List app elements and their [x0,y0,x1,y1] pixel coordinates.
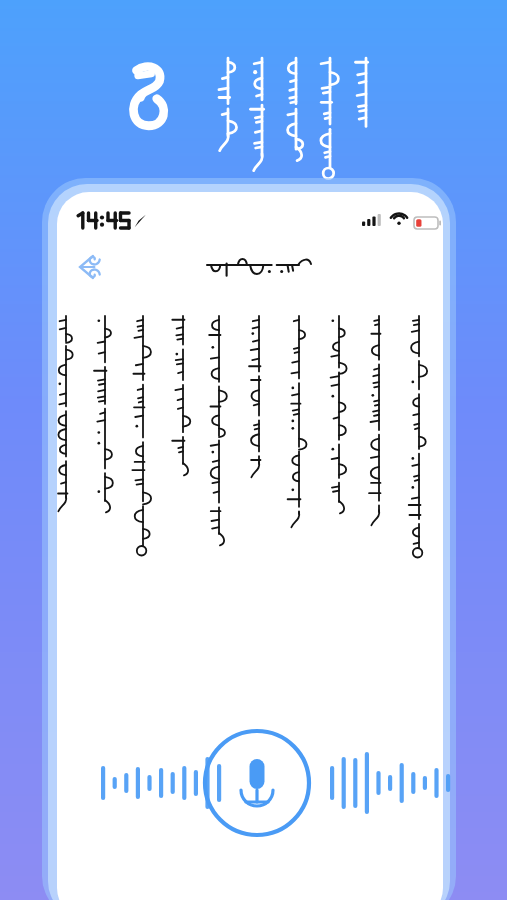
button[interactable]: Record voice [200,726,314,840]
button[interactable]: Back [64,245,108,289]
